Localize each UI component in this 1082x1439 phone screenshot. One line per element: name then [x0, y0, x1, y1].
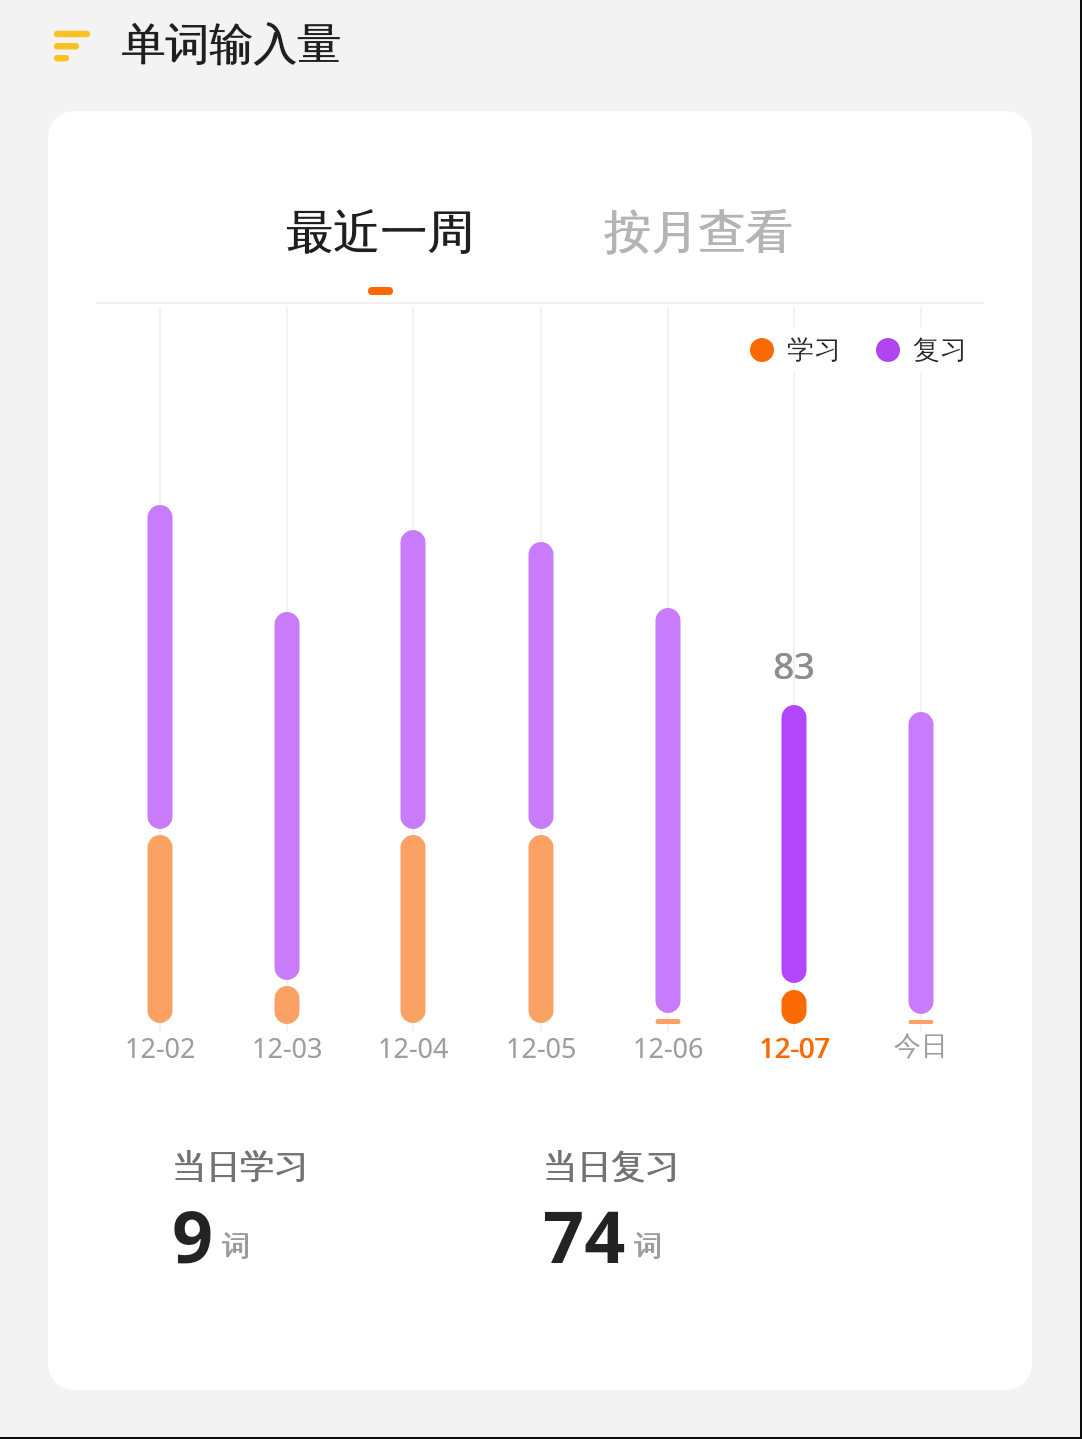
staticText: 词: [635, 1228, 663, 1263]
button[interactable]: 12-06: [608, 307, 728, 1032]
button[interactable]: 12-04: [353, 307, 473, 1032]
staticText: 12-07: [760, 1029, 831, 1066]
button[interactable]: 12-07: [734, 307, 854, 1032]
staticText: 当日学习: [172, 1145, 308, 1188]
staticText: 12-03: [252, 1029, 323, 1066]
staticText: 当日复习: [543, 1145, 679, 1188]
staticText: 83: [773, 641, 815, 690]
staticText: 今日: [894, 1029, 948, 1063]
staticText: 按月查看: [604, 203, 792, 262]
staticText: 当日学习: [173, 1145, 309, 1188]
staticText: 单词输入量: [121, 17, 341, 72]
staticText: 学习: [787, 333, 841, 367]
button[interactable]: 最近一周: [240, 203, 520, 295]
staticText: 9: [172, 1186, 214, 1284]
staticText: 12-06: [633, 1029, 704, 1066]
button[interactable]: 按月查看: [558, 203, 838, 295]
other: Statistics: [54, 30, 94, 64]
staticText: 按月查看: [605, 203, 793, 262]
staticText: 最近一周: [286, 203, 474, 262]
staticText: 单词输入量: [122, 17, 342, 72]
staticText: 词: [222, 1228, 250, 1263]
button[interactable]: 学习: [750, 333, 967, 367]
button[interactable]: 12-03: [227, 307, 347, 1032]
staticText: 当日复习: [544, 1145, 680, 1188]
staticText: 词: [634, 1228, 662, 1263]
staticText: 12-05: [506, 1029, 577, 1066]
staticText: 12-04: [378, 1029, 449, 1066]
staticText: 83: [774, 641, 816, 690]
staticText: 74: [543, 1186, 626, 1284]
staticText: 12-07: [759, 1029, 830, 1066]
staticText: 12-02: [125, 1029, 196, 1066]
button[interactable]: 12-02: [100, 307, 220, 1032]
staticText: 词: [223, 1228, 251, 1263]
staticText: 复习: [913, 333, 967, 367]
staticText: 最近一周: [287, 203, 475, 262]
button[interactable]: 今日: [861, 307, 981, 1032]
button[interactable]: 12-05: [481, 307, 601, 1032]
